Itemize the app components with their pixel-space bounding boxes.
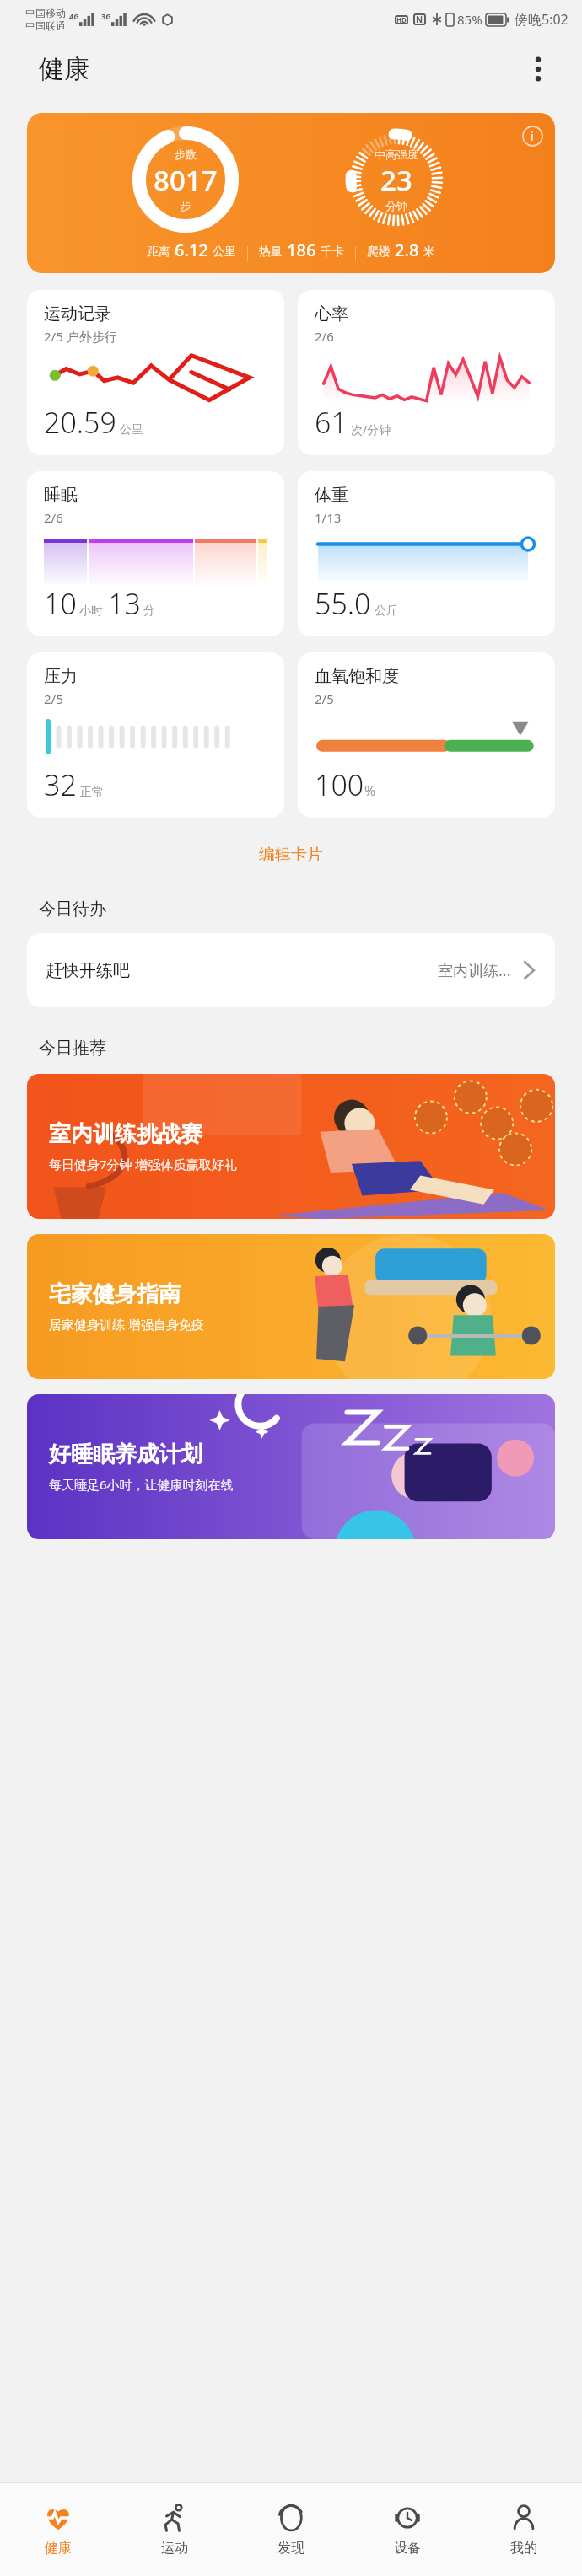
staticText: 公里 <box>120 422 143 437</box>
staticText: 1/13 <box>315 509 342 526</box>
staticText: 正常 <box>80 785 104 800</box>
staticText: 压力 <box>44 666 78 687</box>
button[interactable]: 健康 <box>0 2483 116 2576</box>
staticText: 健康 <box>45 2540 72 2557</box>
staticText: 公斤 <box>375 604 398 619</box>
staticText: 每天睡足6小时，让健康时刻在线 <box>49 1476 234 1493</box>
button[interactable]: 心率 <box>298 290 555 455</box>
button[interactable]: 赶快开练吧 <box>27 933 555 1007</box>
staticText: 85% <box>457 11 482 28</box>
staticText: 傍晚5:02 <box>515 10 569 29</box>
staticText: 分 <box>143 604 155 619</box>
staticText: 3G <box>101 11 111 21</box>
staticText: 运动记录 <box>44 303 111 325</box>
staticText: 中国移动 <box>25 7 66 19</box>
staticText: 运动 <box>161 2540 188 2557</box>
button[interactable]: 编辑卡片 <box>0 840 582 870</box>
staticText: HD <box>396 15 407 24</box>
staticText: 心率 <box>315 303 348 325</box>
staticText: 步数 <box>175 148 197 161</box>
staticText: 2/5 <box>44 690 63 707</box>
staticText: 距离 <box>147 244 170 260</box>
staticText: 分钟 <box>385 199 407 212</box>
staticText: 睡眠 <box>44 485 78 506</box>
staticText: 8017 <box>154 161 218 199</box>
staticText: 宅家健身指南 <box>49 1280 181 1308</box>
staticText: 中国联通 <box>25 19 66 32</box>
staticText: 体重 <box>315 485 348 506</box>
staticText: 血氧饱和度 <box>315 666 399 687</box>
button[interactable]: 发现 <box>233 2483 349 2576</box>
button[interactable]: 睡眠 <box>27 471 284 636</box>
staticText: 今日待办 <box>39 899 106 920</box>
staticText: 发现 <box>278 2540 304 2557</box>
staticText: 次/分钟 <box>351 421 391 437</box>
button[interactable]: 宅家健身指南 <box>27 1234 555 1379</box>
button[interactable]: 设备 <box>349 2483 466 2576</box>
staticText: 2/6 <box>44 509 63 526</box>
staticText: 61 <box>315 403 348 442</box>
button[interactable]: 我的 <box>466 2483 582 2576</box>
staticText: 10 <box>44 584 77 623</box>
staticText: 186 <box>287 239 316 261</box>
button[interactable]: 信息 <box>518 121 547 150</box>
staticText: 今日推荐 <box>39 1038 106 1059</box>
staticText: i <box>531 128 534 144</box>
staticText: 2/5 <box>315 690 334 707</box>
staticText: 4G <box>69 11 79 21</box>
staticText: 2.8 <box>395 239 419 261</box>
staticText: 32 <box>44 765 77 804</box>
button[interactable]: 体重 <box>298 471 555 636</box>
staticText: 100 <box>315 765 364 804</box>
button[interactable]: 压力 <box>27 652 284 818</box>
button[interactable]: 更多 <box>518 49 558 89</box>
staticText: 千卡 <box>321 244 344 260</box>
staticText: 13 <box>108 584 141 623</box>
staticText: 室内训练挑战赛 <box>49 1120 202 1148</box>
staticText: 2/5 户外步行 <box>44 328 117 345</box>
staticText: 55.0 <box>315 584 371 623</box>
button[interactable]: 室内训练挑战赛 <box>27 1074 555 1219</box>
button[interactable]: 好睡眠养成计划 <box>27 1394 555 1539</box>
staticText: 2/6 <box>315 328 334 345</box>
staticText: 热量 <box>259 244 283 260</box>
staticText: 赶快开练吧 <box>46 960 130 981</box>
staticText: 设备 <box>394 2540 421 2557</box>
staticText: 室内训练... <box>438 960 511 981</box>
staticText: 20.59 <box>44 403 116 442</box>
staticText: 健康 <box>39 53 89 85</box>
staticText: % <box>364 781 376 800</box>
staticText: 爬楼 <box>367 244 391 260</box>
staticText: 居家健身训练 增强自身免疫 <box>49 1316 204 1333</box>
staticText: 每日健身7分钟 增强体质赢取好礼 <box>49 1156 237 1173</box>
button[interactable]: 运动记录 <box>27 290 284 455</box>
staticText: 小时 <box>79 604 103 619</box>
staticText: 编辑卡片 <box>259 845 323 865</box>
staticText: 步 <box>181 199 191 212</box>
button[interactable]: 步数 <box>27 113 555 273</box>
button[interactable]: 运动 <box>116 2483 233 2576</box>
staticText: 我的 <box>510 2540 537 2557</box>
staticText: 6.12 <box>175 239 208 261</box>
staticText: 米 <box>423 244 435 260</box>
button[interactable]: 血氧饱和度 <box>298 652 555 818</box>
staticText: 中高强度 <box>375 148 418 161</box>
staticText: 好睡眠养成计划 <box>49 1441 202 1468</box>
staticText: 公里 <box>213 244 236 260</box>
staticText: 23 <box>380 161 412 199</box>
staticText: N <box>416 13 423 25</box>
